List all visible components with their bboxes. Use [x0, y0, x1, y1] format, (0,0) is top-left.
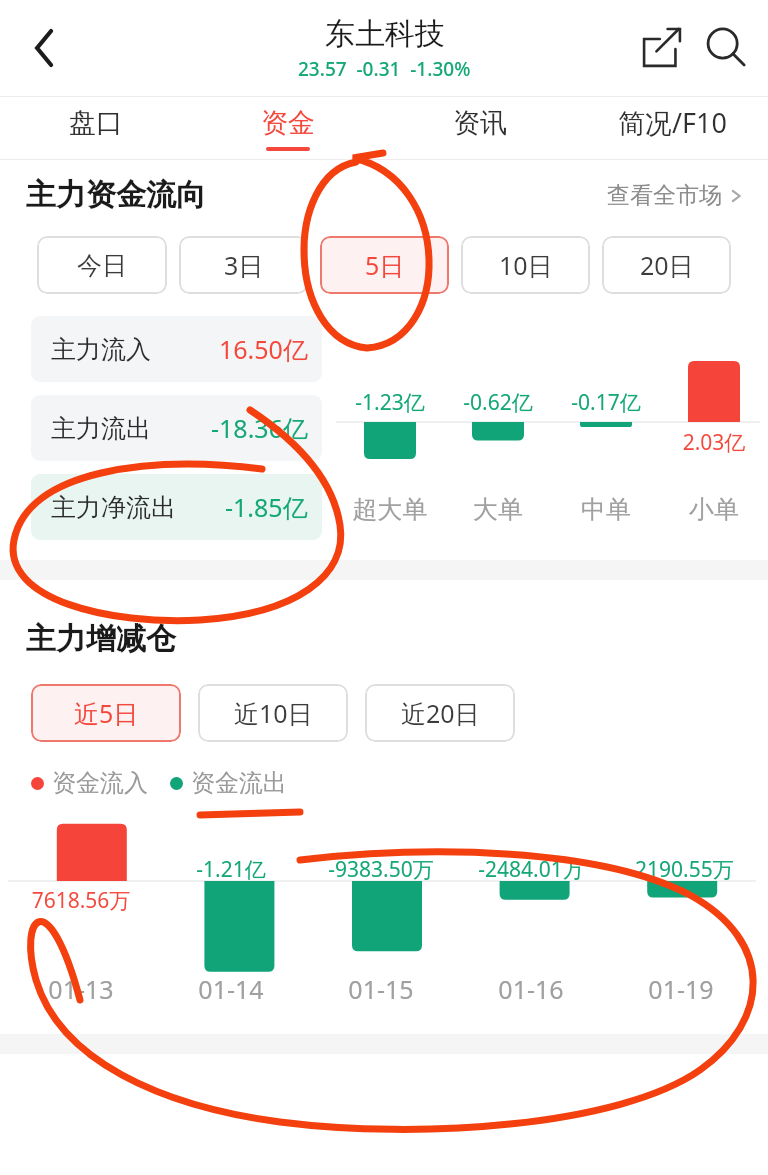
button[interactable]: 简况/F10 — [576, 97, 768, 159]
button[interactable]: 主力净流出 — [31, 474, 322, 540]
staticText: 01-19 — [606, 972, 756, 1006]
button[interactable]: Search — [698, 20, 754, 76]
staticText: 东土科技 — [325, 15, 445, 53]
button[interactable]: 盘口 — [0, 97, 192, 159]
button[interactable]: 资金 — [192, 97, 384, 159]
staticText: 主力净流出 — [51, 492, 176, 523]
staticText: 资金 — [261, 106, 315, 140]
staticText: 01-15 — [306, 972, 456, 1006]
staticText: 近5日 — [74, 696, 139, 730]
staticText: 01-14 — [156, 972, 306, 1006]
staticText: 超大单 — [336, 494, 444, 525]
staticText: -1.23亿 — [336, 388, 444, 417]
staticText: 盘口 — [69, 106, 123, 140]
staticText: -18.36亿 — [211, 411, 308, 445]
staticText: -2190.55万 — [606, 855, 756, 884]
button[interactable]: 10日 — [461, 236, 590, 294]
staticText: 主力流入 — [51, 334, 151, 365]
staticText: 资金流入 — [52, 768, 148, 798]
staticText: 2.03亿 — [660, 428, 768, 457]
button[interactable]: 20日 — [602, 236, 731, 294]
staticText: 主力增减仓 — [26, 620, 176, 658]
staticText: -0.17亿 — [552, 388, 660, 417]
staticText: 16.50亿 — [219, 332, 308, 366]
staticText: 中单 — [552, 494, 660, 525]
staticText: 简况/F10 — [618, 104, 727, 141]
staticText: -1.21亿 — [156, 855, 306, 884]
button[interactable]: 3日 — [179, 236, 308, 294]
staticText: -2484.01万 — [456, 855, 606, 884]
button[interactable]: 近10日 — [198, 684, 348, 742]
staticText: 近20日 — [401, 696, 480, 730]
staticText: 大单 — [444, 494, 552, 525]
staticText: 资金流出 — [191, 768, 287, 798]
button[interactable]: Share — [634, 20, 690, 76]
staticText: 主力流出 — [51, 413, 151, 444]
staticText: 小单 — [660, 494, 768, 525]
staticText: 23.57 -0.31 -1.30% — [298, 56, 471, 82]
button[interactable]: 主力流入 — [31, 316, 322, 382]
staticText: -0.62亿 — [444, 388, 552, 417]
staticText: 20日 — [640, 248, 694, 282]
button[interactable]: 近20日 — [365, 684, 515, 742]
button[interactable]: 近5日 — [31, 684, 181, 742]
button[interactable]: 今日 — [37, 236, 167, 294]
staticText: 查看全市场 — [607, 181, 722, 210]
staticText: -1.85亿 — [225, 490, 308, 524]
staticText: 3日 — [224, 248, 264, 282]
button[interactable]: 查看全市场 — [607, 181, 744, 210]
staticText: 10日 — [499, 248, 553, 282]
staticText: 01-13 — [6, 972, 156, 1006]
button[interactable]: 资讯 — [384, 97, 576, 159]
staticText: 01-16 — [456, 972, 606, 1006]
staticText: 资讯 — [453, 106, 507, 140]
staticText: 今日 — [77, 250, 127, 281]
staticText: 5日 — [365, 248, 405, 282]
button[interactable]: 5日 — [320, 236, 449, 294]
staticText: 7618.56万 — [6, 886, 156, 915]
staticText: 近10日 — [234, 696, 313, 730]
button[interactable]: Back — [10, 17, 72, 79]
staticText: 主力资金流向 — [26, 176, 206, 214]
staticText: -9383.50万 — [306, 855, 456, 884]
button[interactable]: 主力流出 — [31, 395, 322, 461]
